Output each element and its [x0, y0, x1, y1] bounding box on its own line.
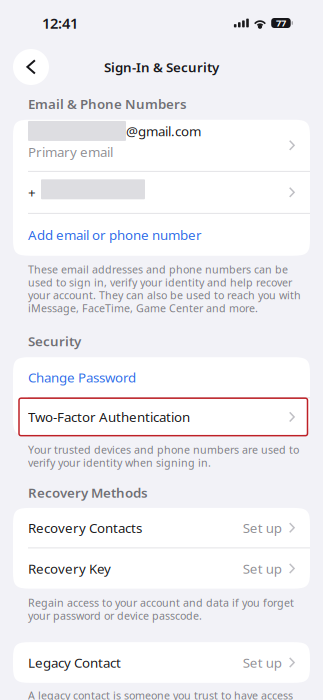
- staticText: A legacy contact is someone you trust to…: [28, 688, 293, 700]
- staticText: Security: [28, 332, 81, 350]
- staticText: Primary email: [28, 143, 113, 161]
- staticText: Recovery Key: [28, 560, 111, 577]
- staticText: Sign-In & Security: [104, 58, 219, 76]
- button[interactable]: Change Password: [13, 357, 310, 397]
- staticText: Email & Phone Numbers: [28, 95, 187, 113]
- button[interactable]: Legacy Contact: [13, 642, 310, 683]
- button[interactable]: Recovery Contacts: [13, 508, 310, 547]
- staticText: Recovery Contacts: [28, 519, 142, 537]
- staticText: @gmail.com: [126, 122, 201, 140]
- button[interactable]: Add email or phone number: [13, 214, 310, 256]
- button[interactable]: Back: [13, 49, 49, 85]
- button[interactable]: @gmail.com: [13, 120, 310, 171]
- staticText: Change Password: [28, 368, 136, 386]
- staticText: 77: [276, 17, 286, 29]
- staticText: Your trusted devices and phone numbers a…: [28, 443, 299, 470]
- staticText: Legacy Contact: [28, 654, 121, 671]
- staticText: Set up: [243, 519, 282, 537]
- staticText: 12:41: [42, 13, 78, 33]
- staticText: Regain access to your account and data i…: [28, 595, 294, 623]
- staticText: Two-Factor Authentication: [28, 408, 190, 426]
- staticText: +: [28, 183, 36, 201]
- staticText: These email addresses and phone numbers …: [28, 262, 301, 315]
- staticText: Set up: [243, 654, 282, 671]
- button[interactable]: Two-Factor Authentication: [13, 398, 310, 436]
- button[interactable]: Recovery Key: [13, 548, 310, 589]
- button[interactable]: +: [13, 172, 310, 213]
- staticText: Recovery Methods: [28, 484, 148, 501]
- staticText: Add email or phone number: [28, 226, 202, 244]
- staticText: Set up: [243, 560, 282, 577]
